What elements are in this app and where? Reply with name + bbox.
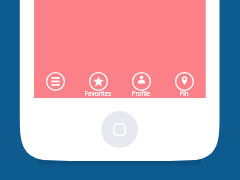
button[interactable]: Menu [34,70,76,98]
button[interactable]: Pin [163,70,205,98]
staticText: Favorites [77,89,119,97]
button[interactable]: Profile [120,70,162,98]
button[interactable]: Favorites [77,70,119,98]
staticText: Profile [120,89,162,97]
staticText: Pin [163,89,205,97]
button[interactable]: Home [101,111,138,148]
